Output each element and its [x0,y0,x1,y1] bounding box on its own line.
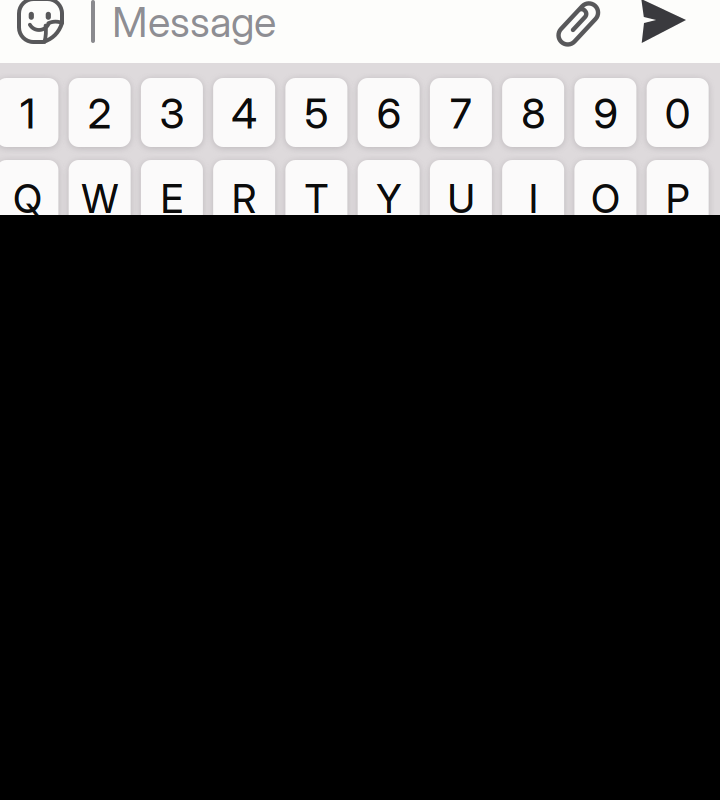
button[interactable]: P [647,160,709,229]
button[interactable]: U [430,160,492,229]
button[interactable]: 5 [285,78,347,147]
button[interactable]: W [69,160,131,229]
staticText: P [666,176,690,222]
button[interactable]: I [502,160,564,229]
button[interactable]: 9 [574,78,636,147]
staticText: Q [13,176,42,222]
staticText: T [304,176,328,222]
staticText: Message [112,0,276,47]
staticText: 7 [450,88,472,138]
button[interactable]: E [141,160,203,229]
button[interactable]: Q [0,160,58,229]
button[interactable]: 0 [647,78,709,147]
staticText: U [447,176,474,222]
staticText: 1 [20,88,35,138]
button[interactable]: 2 [69,78,131,147]
staticText: Y [376,176,401,222]
staticText: I [529,176,538,222]
staticText: R [232,176,257,222]
staticText: 6 [377,88,401,138]
button[interactable]: Y [358,160,420,229]
staticText: 2 [88,88,112,138]
button[interactable]: 8 [502,78,564,147]
staticText: 4 [231,88,257,138]
button[interactable]: R [213,160,275,229]
staticText: O [591,176,620,222]
staticText: 9 [593,88,617,138]
staticText: W [81,176,118,222]
button[interactable]: 6 [358,78,420,147]
button[interactable]: Stickers [17,0,81,61]
staticText: E [160,176,183,222]
button[interactable]: 4 [213,78,275,147]
button[interactable]: 3 [141,78,203,147]
staticText: 5 [304,88,328,138]
button[interactable]: O [574,160,636,229]
staticText: 0 [665,88,691,138]
button[interactable]: 7 [430,78,492,147]
staticText: 8 [521,88,545,138]
button[interactable]: Attach file [551,0,607,41]
button[interactable]: T [285,160,347,229]
button[interactable]: Send [640,0,686,44]
button[interactable]: 1 [0,78,58,147]
staticText: 3 [159,88,184,138]
